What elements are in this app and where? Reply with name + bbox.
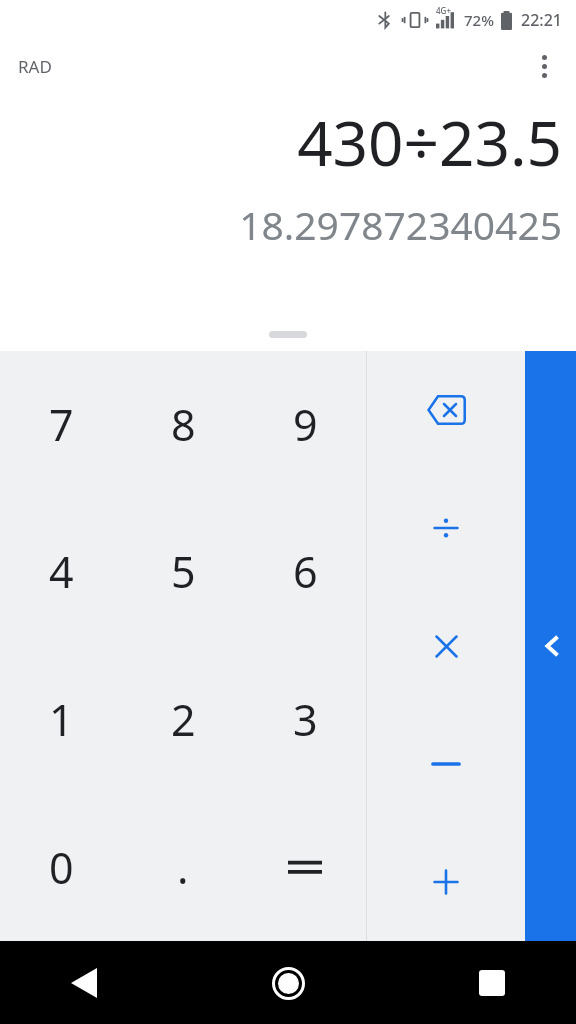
button[interactable]: 3 (244, 645, 366, 793)
staticText: 7 (49, 395, 74, 454)
button[interactable]: 0 (0, 793, 122, 941)
button[interactable]: 8 (122, 351, 244, 498)
button[interactable]: 9 (244, 351, 366, 498)
staticText: 5 (171, 542, 196, 601)
button[interactable]: Back (56, 955, 112, 1011)
button[interactable] (244, 793, 366, 941)
button[interactable]: Open panel (525, 351, 576, 941)
staticText: 22:21 (521, 9, 562, 31)
button[interactable]: . (122, 793, 244, 941)
button[interactable]: Recent apps (464, 955, 520, 1011)
staticText: 1 (49, 690, 74, 749)
button[interactable]: RAD (16, 51, 54, 82)
staticText: 9 (293, 395, 318, 454)
button[interactable]: More options (522, 44, 566, 88)
button[interactable]: 4 (0, 498, 122, 645)
staticText: 2 (171, 690, 196, 749)
button[interactable]: 7 (0, 351, 122, 498)
staticText: 0 (49, 838, 74, 897)
staticText: . (177, 838, 189, 897)
button[interactable] (367, 823, 525, 941)
button[interactable]: 1 (0, 645, 122, 793)
staticText: 72% (464, 10, 494, 30)
button[interactable]: 5 (122, 498, 244, 645)
button[interactable]: 6 (244, 498, 366, 645)
staticText: 6 (293, 542, 318, 601)
button[interactable] (367, 469, 525, 587)
staticText: 3 (293, 690, 318, 749)
staticText: 8 (171, 395, 196, 454)
staticText: 18.297872340425 (239, 198, 562, 251)
button[interactable]: Expand history (269, 331, 307, 338)
button[interactable] (367, 705, 525, 823)
button[interactable] (367, 587, 525, 705)
staticText: 4G+ (436, 5, 451, 16)
staticText: 430÷23.5 (297, 100, 562, 184)
staticText: 4 (49, 542, 74, 601)
button[interactable]: 2 (122, 645, 244, 793)
button[interactable]: Home (260, 955, 316, 1011)
button[interactable]: Backspace (367, 351, 525, 469)
